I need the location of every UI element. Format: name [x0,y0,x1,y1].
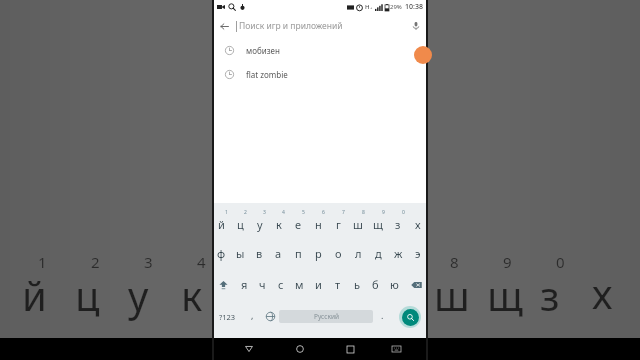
staticText: 5 [302,209,305,216]
staticText: п [295,246,302,261]
staticText: х [415,217,421,232]
staticText: 0 [402,209,405,216]
staticText: г [336,217,341,232]
staticText: 1 [225,209,228,216]
staticText: 3 [144,252,153,272]
staticText: м [295,277,304,292]
button[interactable]: Голосовой поиск [404,14,428,38]
button[interactable]: с [271,269,290,300]
button[interactable]: 0 [388,207,408,238]
button[interactable]: Главный экран [274,338,325,360]
button[interactable]: я [235,269,253,300]
staticText: щ [487,268,523,322]
button[interactable]: л [348,238,368,269]
staticText: з [540,268,560,322]
button[interactable]: в [250,238,269,269]
button[interactable]: д [368,238,388,269]
button[interactable]: а [269,238,288,269]
button[interactable]: 5 [288,207,308,238]
button[interactable]: Русский [279,310,373,323]
button[interactable]: ы [231,238,250,269]
staticText: к [276,217,282,232]
staticText: ?123 [219,312,236,322]
staticText: й [22,268,47,322]
button[interactable]: 8 [348,207,368,238]
button[interactable]: о [328,238,348,269]
button[interactable]: 2 [231,207,250,238]
button[interactable]: п [288,238,308,269]
staticText: 2 [91,252,100,272]
staticText: и [315,277,322,292]
staticText: з [395,217,401,232]
button[interactable]: 7 [328,207,348,238]
button[interactable]: ю [385,269,404,300]
button[interactable]: Назад [224,338,274,360]
staticText: ь [354,277,360,292]
button[interactable]: flat zombie [212,62,428,86]
button[interactable]: Backspace [404,269,428,300]
button[interactable]: 9 [368,207,388,238]
button[interactable]: ф [212,238,231,269]
staticText: 3 [263,209,266,216]
button[interactable]: Сменить язык [261,300,279,333]
button[interactable]: , [243,300,261,333]
staticText: е [295,217,302,232]
staticText: 9 [382,209,385,216]
button[interactable]: 1 [212,207,231,238]
staticText: 8 [450,252,459,272]
staticText: 2 [244,209,247,216]
button[interactable]: Последние приложения [325,338,376,360]
staticText: в [256,246,263,261]
staticText: щ [373,217,383,232]
button[interactable]: ч [253,269,271,300]
button[interactable]: ь [347,269,366,300]
button[interactable]: . [373,300,391,333]
staticText: 4 [282,209,285,216]
staticText: 10:38 [405,2,423,12]
staticText: б [372,277,379,292]
button[interactable]: Shift [212,269,235,300]
button[interactable]: ж [388,238,408,269]
staticText: + [370,5,373,10]
button[interactable]: Назад [212,14,236,38]
staticText: ж [394,246,403,261]
staticText: мобизен [246,45,280,56]
staticText: э [415,246,421,261]
staticText: 0 [556,252,565,272]
staticText: у [128,268,149,322]
button[interactable]: Поиск [399,306,421,328]
staticText: ц [237,217,244,232]
button[interactable]: ?123 [212,300,243,333]
button[interactable]: и [309,269,328,300]
button[interactable]: т [328,269,347,300]
button[interactable]: 4 [269,207,288,238]
staticText: 1 [38,252,47,272]
staticText: 4 [197,252,206,272]
staticText: ш [353,217,363,232]
staticText: к [181,268,203,322]
staticText: ю [390,277,399,292]
staticText: 7 [342,209,345,216]
staticText: с [278,277,284,292]
staticText: й [218,217,225,232]
staticText: Поиск игр и приложений [239,20,404,32]
staticText: д [375,246,382,261]
staticText: а [275,246,282,261]
staticText: ы [236,246,245,261]
staticText: , [251,309,254,321]
button[interactable]: р [308,238,328,269]
button[interactable]: э [408,238,428,269]
staticText: ц [75,268,100,322]
button[interactable]: х [408,207,428,238]
staticText: л [355,246,362,261]
staticText: т [335,277,341,292]
staticText: Русский [314,312,339,321]
staticText: flat zombie [246,69,288,80]
button[interactable]: 3 [250,207,269,238]
staticText: я [241,277,248,292]
button[interactable]: Скрыть клавиатуру [376,338,416,360]
button[interactable]: 6 [308,207,328,238]
button[interactable]: м [290,269,309,300]
button[interactable]: б [366,269,385,300]
button[interactable]: мобизен [212,38,428,62]
